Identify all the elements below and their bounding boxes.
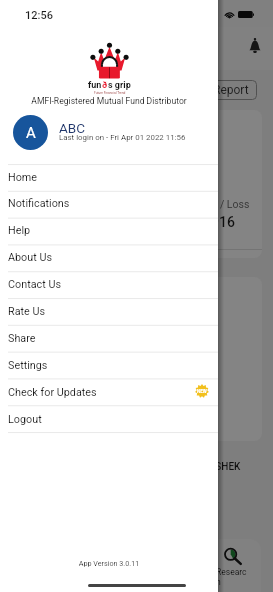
staticText: A <box>26 124 36 142</box>
button[interactable]: Check for Updates <box>0 379 218 406</box>
staticText: Notifications <box>8 197 70 210</box>
staticText: AMFI-Registered Mutual Fund Distributor <box>0 96 218 106</box>
button[interactable]: Contact Us <box>0 271 218 298</box>
staticText: Logout <box>8 413 42 426</box>
staticText: Home <box>8 171 38 184</box>
staticText: Future Financial Trend <box>94 91 126 95</box>
staticText: Report <box>213 83 249 97</box>
button[interactable]: Home <box>0 164 218 190</box>
staticText: Invested Value <box>24 170 90 182</box>
staticText: HI ABHISHEK <box>180 461 241 473</box>
staticText: ð <box>102 80 108 91</box>
button[interactable]: Help <box>0 217 218 244</box>
button[interactable]: Notifications <box>0 190 218 217</box>
staticText: 12,916 <box>192 214 235 230</box>
staticText: Help <box>8 224 31 237</box>
staticText: 1,23,456 <box>24 142 79 158</box>
staticText: Share <box>8 332 36 345</box>
staticText: Profit / Loss <box>192 198 250 210</box>
staticText: fun <box>88 80 102 91</box>
staticText: App Version 3.0.11 <box>0 559 218 567</box>
button[interactable]: Rate Us <box>0 298 218 325</box>
button[interactable]: About Us <box>0 244 218 271</box>
button[interactable]: Report <box>205 80 257 100</box>
staticText: ABC <box>59 120 86 136</box>
staticText: Research <box>216 567 250 587</box>
staticText: Contact Us <box>8 278 61 291</box>
staticText: Last login on - Fri Apr 01 2022 11:56 <box>59 133 186 142</box>
button[interactable]: Logout <box>0 406 218 433</box>
staticText: Current Value <box>24 128 85 140</box>
button[interactable]: A <box>0 110 218 155</box>
button[interactable]: Research <box>216 548 250 587</box>
button[interactable]: Settings <box>0 352 218 379</box>
staticText: Rate Us <box>8 305 46 318</box>
staticText: Settings <box>8 359 48 372</box>
staticText: About Us <box>8 251 52 264</box>
staticText: Check for Updates <box>8 386 97 399</box>
button[interactable]: Notifications <box>248 38 262 54</box>
button[interactable]: Share <box>0 325 218 352</box>
staticText: s grip <box>108 80 131 91</box>
staticText: NEW <box>197 389 207 394</box>
staticText: 12:56 <box>25 9 53 22</box>
